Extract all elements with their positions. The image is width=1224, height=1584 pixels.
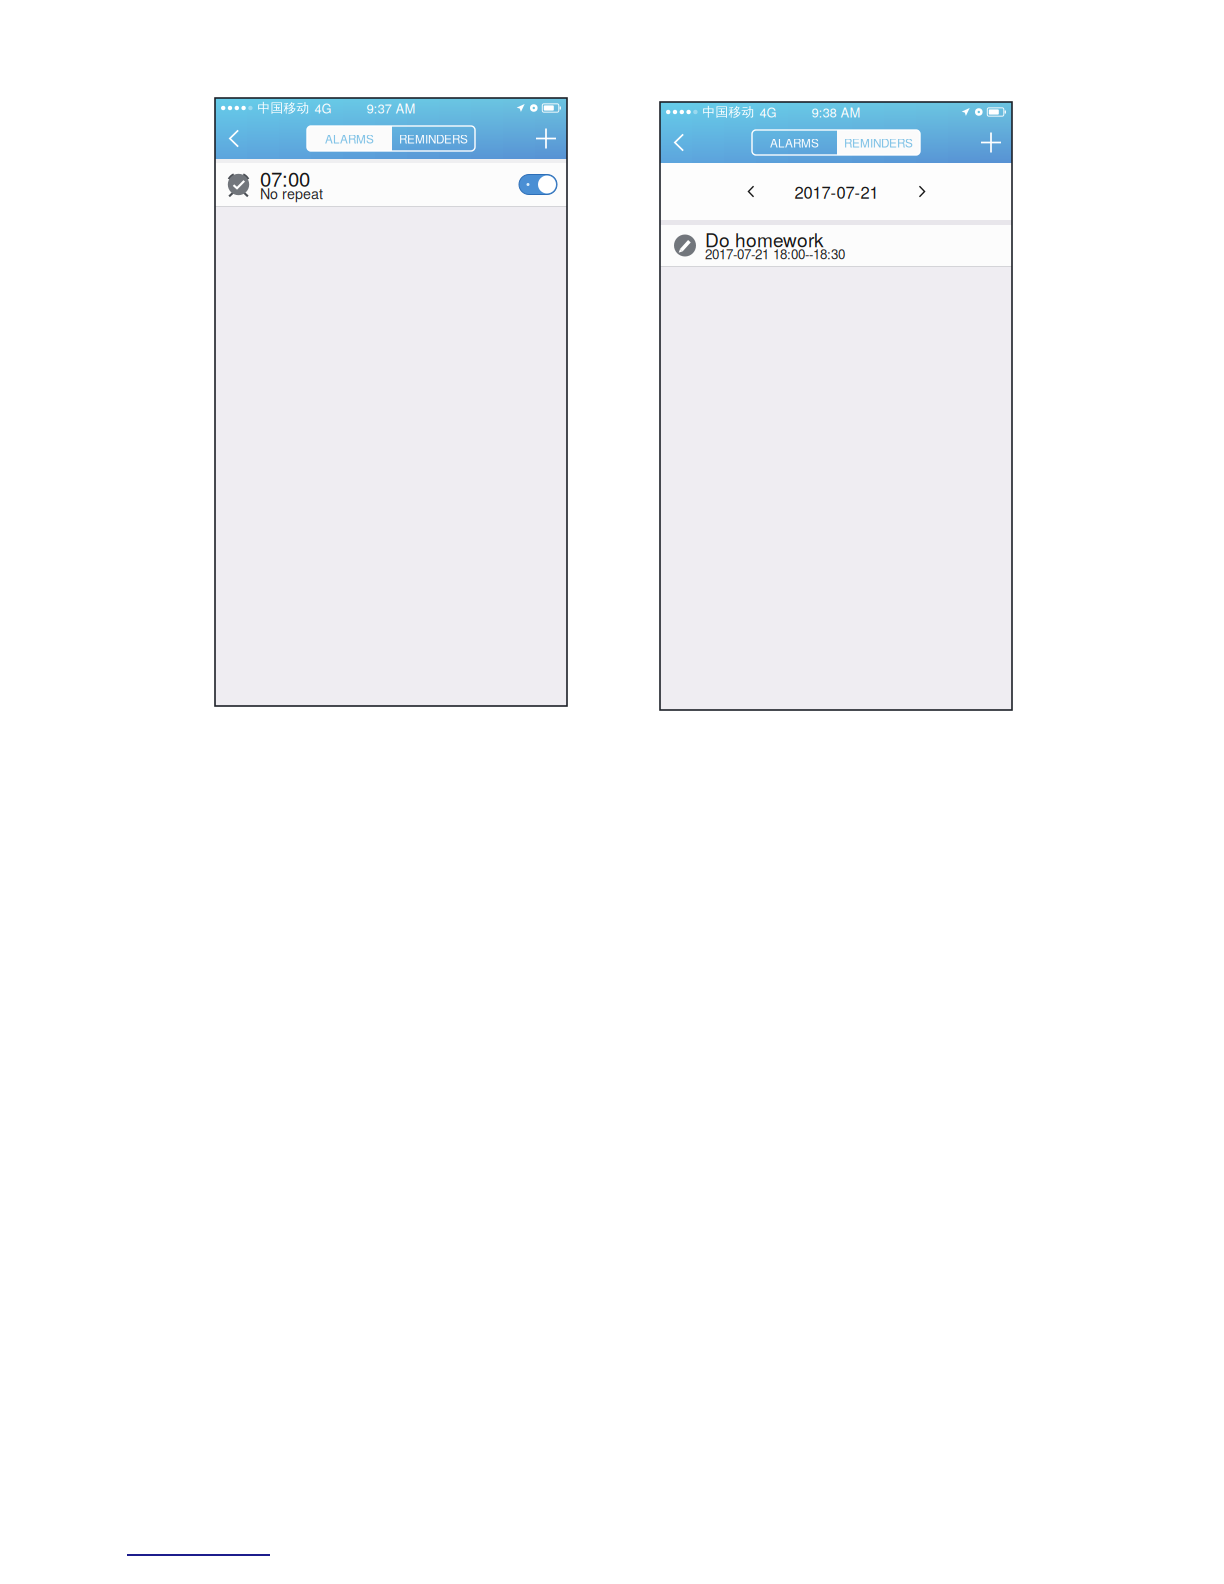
button[interactable]: REMINDERS xyxy=(837,130,920,155)
staticText: No repeat xyxy=(260,183,323,203)
staticText: REMINDERS xyxy=(399,130,468,147)
button[interactable]: REMINDERS xyxy=(392,126,475,151)
button[interactable]: Do homework xyxy=(660,225,1012,266)
staticText: 4G xyxy=(315,99,332,117)
staticText: 中国移动 xyxy=(703,104,755,120)
button[interactable]: Add xyxy=(970,122,1012,163)
staticText: 07:00 xyxy=(260,163,310,193)
button[interactable]: Back xyxy=(660,122,698,163)
staticText: ALARMS xyxy=(325,130,374,147)
button[interactable]: Previous day xyxy=(731,170,771,212)
button[interactable]: ALARMS xyxy=(307,126,392,151)
staticText: 4G xyxy=(760,103,777,121)
button[interactable]: Next day xyxy=(902,170,942,212)
staticText: 9:37 AM xyxy=(366,99,415,117)
staticText: REMINDERS xyxy=(844,134,913,151)
button[interactable]: 07:00 xyxy=(215,163,567,206)
staticText: 2017-07-21 18:00--18:30 xyxy=(705,244,845,263)
staticText: Do homework xyxy=(705,225,824,253)
staticText: 2017-07-21 xyxy=(794,180,878,203)
staticText: 9:38 AM xyxy=(811,103,860,121)
button[interactable]: Back xyxy=(215,118,253,159)
button[interactable]: ALARMS xyxy=(752,130,837,155)
button[interactable]: Add xyxy=(525,118,567,159)
staticText: 中国移动 xyxy=(258,100,310,116)
staticText: ALARMS xyxy=(770,134,819,151)
